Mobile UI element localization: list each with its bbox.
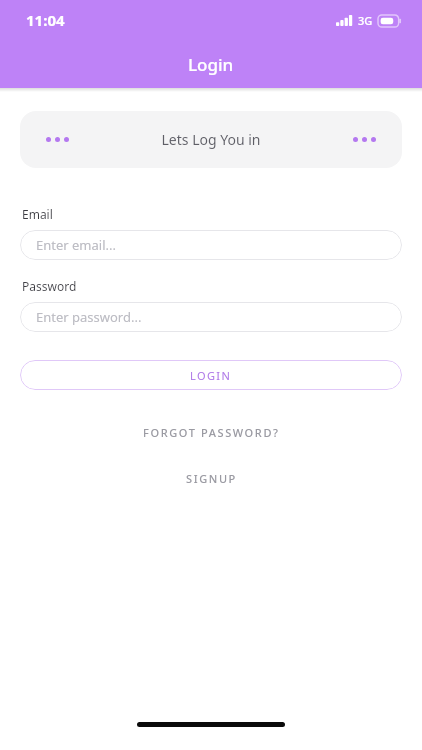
button[interactable]: SIGNUP bbox=[0, 468, 422, 488]
staticText: Lets Log You in bbox=[95, 130, 327, 149]
staticText: SIGNUP bbox=[186, 471, 237, 486]
staticText: LOGIN bbox=[190, 368, 232, 383]
staticText: Password bbox=[22, 278, 77, 294]
button[interactable]: More options bbox=[20, 111, 402, 168]
button[interactable]: Enter password... bbox=[20, 302, 402, 332]
button[interactable]: Enter email... bbox=[20, 230, 402, 260]
other: More options bbox=[353, 137, 376, 142]
button[interactable]: LOGIN bbox=[20, 360, 402, 390]
button[interactable]: FORGOT PASSWORD? bbox=[0, 422, 422, 442]
staticText: Enter email... bbox=[36, 236, 116, 254]
staticText: 3G bbox=[358, 13, 373, 28]
staticText: FORGOT PASSWORD? bbox=[143, 425, 280, 440]
staticText: 11:04 bbox=[26, 10, 65, 30]
other: More options bbox=[46, 137, 69, 142]
staticText: Login bbox=[188, 53, 234, 76]
staticText: Enter password... bbox=[36, 308, 142, 326]
staticText: Email bbox=[22, 206, 53, 222]
